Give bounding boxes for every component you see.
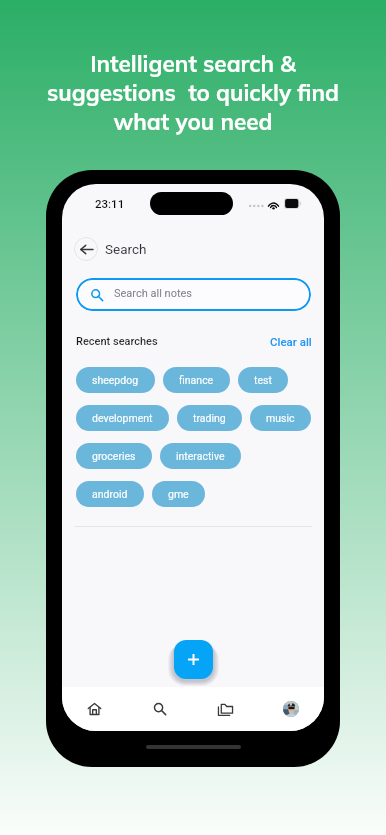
button[interactable]: Profile <box>258 687 324 731</box>
staticText: sheepdog <box>92 374 139 386</box>
staticText: Recent searches <box>76 335 158 348</box>
button[interactable]: Search all notes <box>76 278 311 311</box>
staticText: 23:11 <box>95 197 125 210</box>
staticText: Search all notes <box>114 287 193 300</box>
staticText: development <box>92 412 153 424</box>
button[interactable]: groceries <box>76 443 152 469</box>
staticText: Intelligent search & suggestions to quic… <box>14 49 372 135</box>
button[interactable]: Back <box>74 237 98 261</box>
staticText: groceries <box>92 450 136 462</box>
staticText: android <box>92 488 128 500</box>
button[interactable]: development <box>76 405 169 431</box>
staticText: finance <box>179 374 214 386</box>
button[interactable]: Search <box>127 687 192 731</box>
button[interactable]: test <box>238 367 288 393</box>
button[interactable]: Clear all <box>270 335 312 348</box>
staticText: music <box>266 412 295 424</box>
button[interactable]: Recent searches <box>76 335 158 348</box>
staticText: interactive <box>176 450 225 462</box>
staticText: gme <box>168 488 189 500</box>
button[interactable]: gme <box>152 481 205 507</box>
button[interactable]: trading <box>177 405 242 431</box>
button[interactable]: Add note <box>174 640 213 679</box>
button[interactable]: android <box>76 481 144 507</box>
staticText: trading <box>193 412 226 424</box>
staticText: Clear all <box>270 335 312 348</box>
button[interactable]: finance <box>163 367 230 393</box>
button[interactable]: music <box>250 405 311 431</box>
button[interactable]: sheepdog <box>76 367 155 393</box>
button[interactable]: interactive <box>160 443 241 469</box>
staticText: test <box>254 374 272 386</box>
staticText: Search <box>105 241 147 257</box>
button[interactable]: Home <box>62 687 127 731</box>
button[interactable]: Folders <box>192 687 258 731</box>
